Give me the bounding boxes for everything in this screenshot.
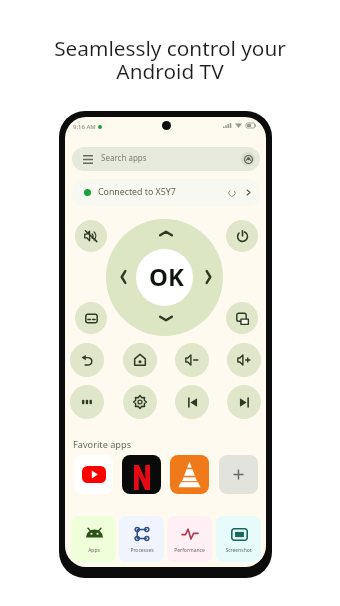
button[interactable]: Back [70, 343, 104, 377]
button[interactable]: Account [241, 152, 255, 166]
staticText: Processes [130, 547, 154, 554]
button[interactable]: Volume down [175, 343, 209, 377]
button[interactable]: D-pad up [154, 221, 178, 245]
staticText: Apps [88, 547, 100, 554]
button[interactable]: Mute [75, 220, 107, 252]
button[interactable]: Settings [123, 385, 157, 419]
button[interactable]: Search apps [72, 147, 260, 171]
staticText: Seamlessly control your Android TV [54, 34, 286, 85]
button[interactable]: YouTube [74, 455, 113, 494]
button[interactable]: Home [123, 343, 157, 377]
button[interactable]: Menu [70, 385, 104, 419]
staticText: Favorite apps [73, 438, 132, 451]
button[interactable]: D-pad left [111, 265, 135, 289]
button[interactable]: VLC [170, 455, 209, 494]
button[interactable]: Performance [167, 516, 212, 562]
button[interactable]: Netflix [122, 455, 161, 494]
button[interactable]: Volume up [227, 343, 261, 377]
staticText: Search apps [101, 152, 147, 163]
staticText: Performance [174, 547, 205, 554]
button[interactable]: Screenshot [216, 516, 261, 562]
button[interactable]: Processes [119, 516, 164, 562]
staticText: Screenshot [225, 547, 252, 554]
staticText: 9:16 AM [73, 123, 96, 131]
button[interactable]: Apps [71, 516, 116, 562]
staticText: OK [149, 260, 184, 293]
button[interactable]: Cast screen [226, 302, 258, 334]
button[interactable]: D-pad right [196, 265, 220, 289]
button[interactable]: Previous [175, 385, 209, 419]
button[interactable]: Connected to X5Y7 [72, 179, 260, 206]
staticText: Connected to X5Y7 [98, 186, 176, 198]
button[interactable]: Keyboard [75, 302, 107, 334]
button[interactable]: Add app [219, 455, 258, 494]
button[interactable]: OK [136, 249, 193, 306]
button[interactable]: Next [227, 385, 261, 419]
button[interactable]: Power [226, 220, 258, 252]
button[interactable]: D-pad down [154, 306, 178, 330]
